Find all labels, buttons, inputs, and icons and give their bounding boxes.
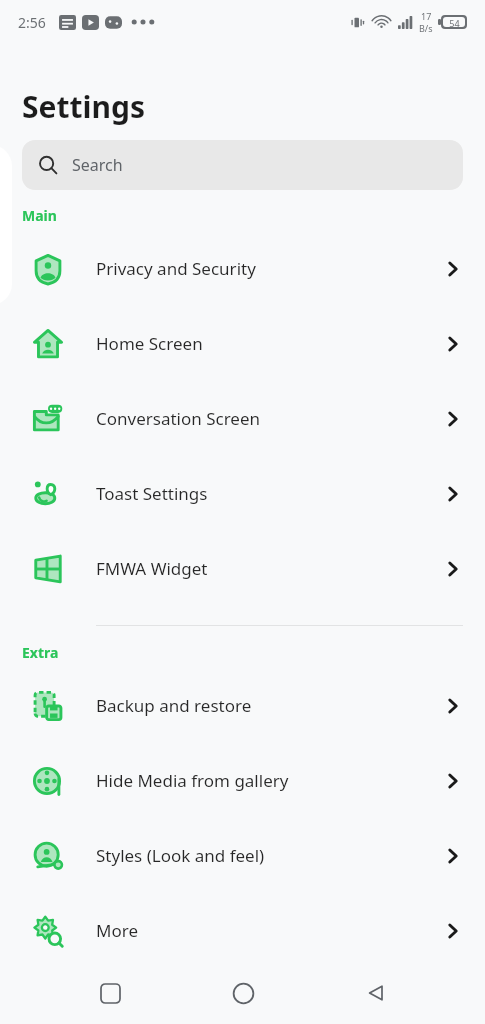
button[interactable]: FMWA Widget xyxy=(0,531,485,606)
staticText: More xyxy=(96,919,443,942)
button[interactable]: Recents xyxy=(86,969,134,1017)
staticText: Home Screen xyxy=(96,332,443,355)
button[interactable]: Hide Media from gallery xyxy=(0,743,485,818)
staticText: Backup and restore xyxy=(96,694,443,717)
button[interactable]: Search xyxy=(22,140,463,190)
button[interactable]: Styles (Look and feel) xyxy=(0,818,485,893)
staticText: Settings xyxy=(22,86,145,127)
button[interactable]: Toast Settings xyxy=(0,456,485,531)
button[interactable]: Backup and restore xyxy=(0,668,485,743)
staticText: 17 xyxy=(421,10,432,22)
staticText: Styles (Look and feel) xyxy=(96,844,443,867)
staticText: FMWA Widget xyxy=(96,557,443,580)
staticText: 54 xyxy=(449,17,460,27)
staticText: Privacy and Security xyxy=(96,257,443,280)
button[interactable]: Conversation Screen xyxy=(0,381,485,456)
staticText: Search xyxy=(72,154,123,176)
button[interactable]: More xyxy=(0,893,485,968)
staticText: Conversation Screen xyxy=(96,407,443,430)
button[interactable]: Back xyxy=(352,969,400,1017)
staticText: 2:56 xyxy=(18,13,46,32)
staticText: Main xyxy=(22,206,57,225)
button[interactable]: Privacy and Security xyxy=(0,231,485,306)
button[interactable]: Home Screen xyxy=(0,306,485,381)
staticText: Toast Settings xyxy=(96,482,443,505)
staticText: Hide Media from gallery xyxy=(96,769,443,792)
staticText: Extra xyxy=(22,643,59,662)
button[interactable]: Home xyxy=(219,969,267,1017)
staticText: B/s xyxy=(419,22,433,34)
